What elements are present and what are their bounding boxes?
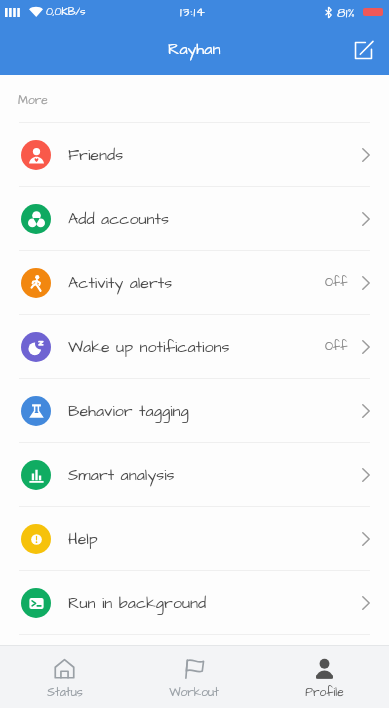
staticText: 0,0KB/s [46,4,86,19]
staticText: Off [325,274,348,291]
button[interactable]: Workout [129,646,259,708]
button[interactable]: Status [0,646,129,708]
button[interactable]: Run in background [0,571,389,634]
staticText: Profile [305,684,344,701]
button[interactable]: Activity alerts [0,251,389,314]
button[interactable]: Add accounts [0,187,389,250]
button[interactable]: Smart analysis [0,443,389,506]
staticText: Friends [68,144,124,166]
staticText: 13:14 [180,3,206,21]
button[interactable]: Wake up notifications [0,315,389,378]
button[interactable]: Profile [259,646,389,708]
button[interactable]: Help [0,507,389,570]
staticText: Workout [169,684,219,701]
staticText: Run in background [68,592,207,614]
staticText: Wake up notifications [68,336,230,358]
button[interactable]: Friends [0,123,389,186]
button[interactable]: Edit [345,32,381,68]
staticText: Add accounts [68,208,170,230]
staticText: Activity alerts [68,272,173,294]
staticText: 81% [337,4,356,22]
staticText: Rayhan [168,38,221,60]
staticText: Status [47,684,83,701]
staticText: More [18,92,48,109]
staticText: Behavior tagging [68,400,189,422]
staticText: Off [325,338,348,355]
button[interactable]: Behavior tagging [0,379,389,442]
staticText: Smart analysis [68,464,175,486]
staticText: Help [68,528,98,550]
